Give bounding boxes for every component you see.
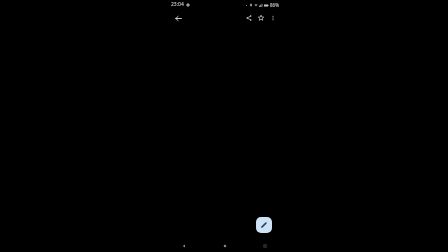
- button[interactable]: Back: [174, 239, 194, 252]
- staticText: 23:04: [171, 1, 184, 8]
- button[interactable]: Recent apps: [255, 239, 275, 252]
- button[interactable]: Home: [215, 239, 235, 252]
- button[interactable]: Favorite: [255, 12, 267, 24]
- button[interactable]: Back: [172, 12, 184, 24]
- button[interactable]: Compose: [256, 217, 272, 233]
- button[interactable]: Share: [243, 12, 255, 24]
- staticText: 86%: [270, 2, 279, 8]
- button[interactable]: More options: [267, 12, 279, 24]
